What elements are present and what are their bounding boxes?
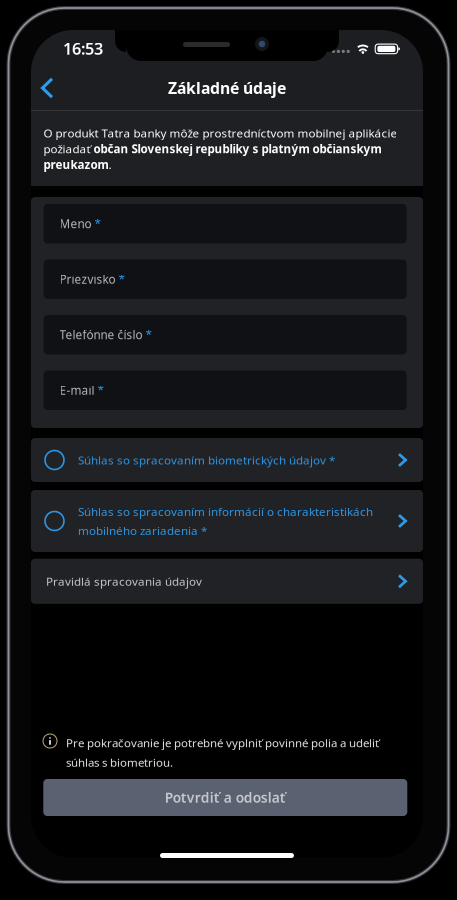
staticText: Telefónne číslo [60,327,143,343]
button[interactable]: Súhlas so spracovaním informácií o chara… [31,490,423,552]
staticText: * [116,271,125,287]
staticText: Potvrdiť a odoslať [165,788,286,807]
staticText: Súhlas so spracovaním biometrických údaj… [78,452,335,468]
staticText: O produkt Tatra banky môže prostredníctv… [43,125,397,141]
staticText: E-mail [60,382,95,398]
button[interactable]: Back [31,68,75,108]
staticText: * [95,382,104,398]
staticText: mobilného zariadenia * [78,522,207,538]
button[interactable]: Pravidlá spracovania údajov [31,559,423,604]
staticText: . [108,157,111,172]
staticText: Meno [60,216,92,232]
staticText: Pre pokračovanie je potrebné vyplniť pov… [66,735,379,751]
button[interactable]: Potvrdiť a odoslať [43,779,407,816]
staticText: * [143,327,152,343]
staticText: požiadať [43,141,93,157]
staticText: Priezvisko [60,271,116,287]
button[interactable]: Súhlas so spracovaním biometrických údaj… [31,438,423,482]
staticText: * [92,216,101,232]
staticText: preukazom [43,157,108,172]
staticText: Základné údaje [168,77,286,99]
staticText: občan Slovenskej republiky s platným obč… [93,141,381,157]
staticText: súhlas s biometriou. [66,755,173,770]
staticText: Pravidlá spracovania údajov [46,573,202,589]
staticText: 16:53 [63,37,103,60]
staticText: Súhlas so spracovaním informácií o chara… [78,504,373,519]
